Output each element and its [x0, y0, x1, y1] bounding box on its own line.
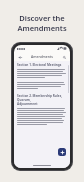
button[interactable]: Back	[17, 54, 23, 60]
staticText: Discover the	[19, 13, 65, 23]
button[interactable]: Add bookmark	[58, 148, 66, 156]
button[interactable]: Search	[61, 54, 67, 60]
staticText: Section 2. Membership Rules, Quorum, Adj…	[17, 94, 67, 106]
staticText: Amendments	[31, 54, 53, 59]
staticText: Section 1. Electoral Meetings	[17, 63, 62, 67]
staticText: Amendments	[17, 23, 67, 33]
